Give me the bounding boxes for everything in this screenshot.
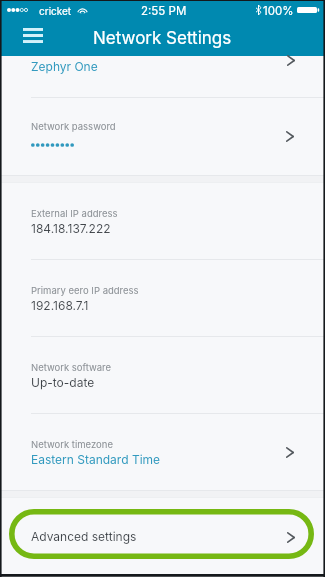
staticText: Network password <box>31 121 116 132</box>
button[interactable]: Advanced settings <box>0 498 325 574</box>
staticText: cricket <box>39 5 72 17</box>
staticText: Zephyr One <box>31 59 98 74</box>
staticText: Network Settings <box>93 28 232 49</box>
staticText: Primary eero IP address <box>31 285 139 296</box>
button[interactable]: Network timezone <box>0 414 325 490</box>
staticText: Advanced settings <box>31 529 137 544</box>
staticText: Network software <box>31 362 112 373</box>
button[interactable]: External IP address <box>0 183 325 259</box>
staticText: 184.18.137.222 <box>31 221 111 236</box>
staticText: Eastern Standard Time <box>31 452 161 467</box>
button[interactable]: Open navigation menu <box>0 20 56 56</box>
staticText: 2:55 PM <box>141 4 187 18</box>
button[interactable]: Primary eero IP address <box>0 260 325 336</box>
staticText: 100% <box>263 4 294 18</box>
button[interactable]: Network software <box>0 337 325 413</box>
staticText: Network timezone <box>31 439 113 450</box>
button[interactable]: Network password <box>0 98 325 175</box>
staticText: Up-to-date <box>31 375 95 390</box>
staticText: 192.168.7.1 <box>31 298 89 313</box>
staticText: External IP address <box>31 208 118 219</box>
button[interactable]: Zephyr One <box>0 56 325 97</box>
